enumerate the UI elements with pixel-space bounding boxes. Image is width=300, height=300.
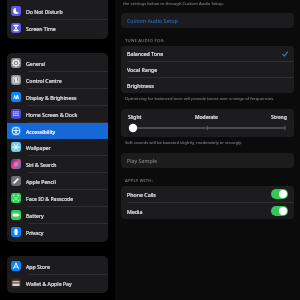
staticText: the settings below or through Custom Aud… [123,1,224,7]
staticText: Accessibility [26,128,56,135]
staticText: Custom Audio Setup [127,17,178,24]
button[interactable]: Apple Pencil [7,173,108,189]
button[interactable]: General [7,55,108,71]
button[interactable]: Media [121,203,294,219]
staticText: Apple Pencil [26,178,56,185]
staticText: Brightness [127,82,154,89]
button[interactable]: Battery [7,207,108,223]
staticText: Play Sample [127,157,158,164]
button[interactable]: Custom Audio Setup [121,13,294,28]
button[interactable]: Do Not Disturb [7,3,108,19]
button[interactable]: Display & Brightness [7,89,108,105]
staticText: General [26,60,46,67]
button[interactable]: Siri & Search [7,156,108,172]
staticText: Vocal Range [127,66,158,73]
button[interactable]: Home Screen & Dock [7,106,108,122]
staticText: Home Screen & Dock [26,111,78,118]
staticText: Optimising for balanced tone will provid… [125,96,275,102]
button[interactable]: Wallpaper [7,139,108,155]
staticText: Privacy [26,229,44,236]
staticText: App Store [26,263,50,270]
staticText: Media [127,208,143,215]
staticText: APPLY WITH: [125,177,153,183]
button[interactable]: Accessibility [7,123,108,139]
button[interactable]: Wallet & Apple Pay [7,275,108,291]
staticText: Slight [128,114,142,121]
staticText: Screen Time [26,25,56,32]
staticText: TUNE AUDIO FOR: [125,37,165,43]
button[interactable]: Phone Calls, on [271,189,288,199]
button[interactable]: Media, on [271,206,288,216]
button[interactable]: Boost amount slider [128,124,287,132]
button[interactable]: Phone Calls [121,186,294,202]
button[interactable]: Screen Time [7,20,108,36]
staticText: Battery [26,212,44,219]
staticText: Display & Brightness [26,94,77,101]
button[interactable]: Privacy [7,224,108,240]
staticText: Wallpaper [26,144,51,151]
staticText: Strong [271,114,287,121]
staticText: Moderate [195,114,218,121]
staticText: Phone Calls [127,191,156,198]
staticText: Balanced Tone [127,50,164,57]
staticText: Siri & Search [26,161,57,168]
button[interactable]: App Store [7,258,108,274]
staticText: Wallet & Apple Pay [26,280,72,287]
staticText: Control Centre [26,77,62,84]
button[interactable]: Face ID & Passcode [7,190,108,206]
button[interactable]: Play Sample [121,153,294,168]
button[interactable]: Vocal Range [121,62,294,77]
staticText: Do Not Disturb [26,8,63,15]
button[interactable]: Control Centre [7,72,108,88]
button[interactable]: Brightness [121,78,294,93]
staticText: Face ID & Passcode [26,195,74,202]
staticText: Soft sounds will be boosted slightly, mo… [125,140,243,146]
button[interactable]: Balanced Tone [121,46,294,61]
